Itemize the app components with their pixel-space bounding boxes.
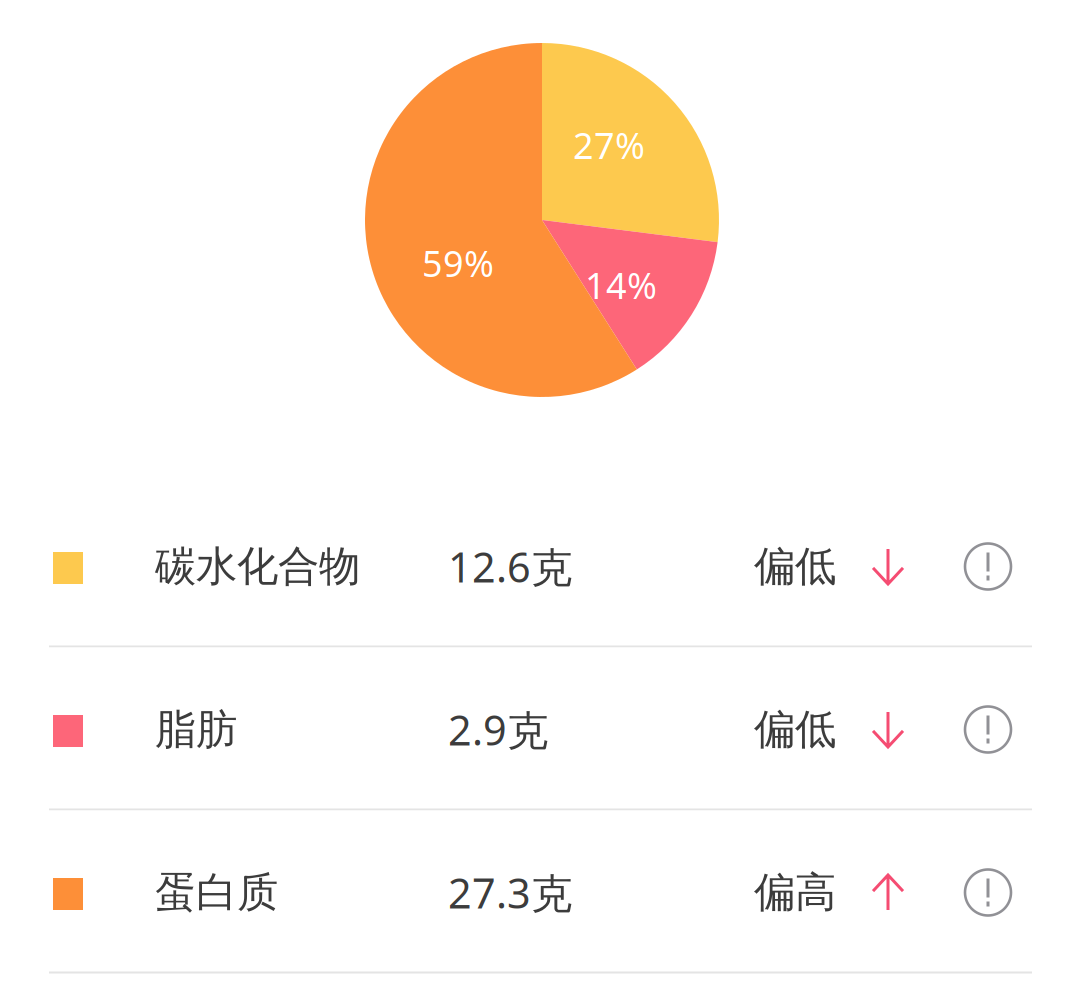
staticText: 偏低: [754, 541, 836, 592]
button[interactable]: 蛋白质: [0, 810, 1080, 971]
staticText: 偏低: [754, 704, 836, 755]
staticText: 27.3克: [448, 865, 572, 920]
staticText: 蛋白质: [155, 867, 278, 918]
staticText: 偏高: [754, 867, 836, 918]
staticText: 脂肪: [155, 704, 237, 755]
staticText: 碳水化合物: [155, 541, 360, 592]
staticText: 12.6克: [448, 539, 572, 594]
staticText: 27%: [573, 121, 645, 169]
button[interactable]: 蛋白质 说明: [956, 860, 1020, 924]
button[interactable]: 碳水化合物: [0, 484, 1080, 645]
staticText: 14%: [585, 261, 657, 309]
button[interactable]: 脂肪 说明: [956, 697, 1020, 761]
staticText: 59%: [422, 239, 494, 287]
button[interactable]: 碳水化合物 说明: [956, 534, 1020, 598]
button[interactable]: 脂肪: [0, 647, 1080, 808]
staticText: 2.9克: [448, 702, 548, 757]
